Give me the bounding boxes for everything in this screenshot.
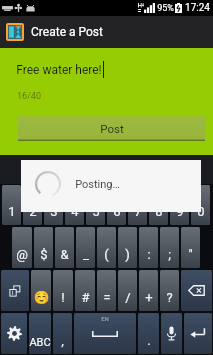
staticText: 7: [134, 204, 142, 219]
button[interactable]: mic: [161, 313, 182, 354]
staticText: Free water here!: [16, 63, 102, 77]
button[interactable]: ?: [160, 270, 179, 311]
button[interactable]: /: [118, 270, 137, 311]
staticText: 4: [71, 204, 79, 219]
button[interactable]: 2: [23, 185, 42, 225]
button[interactable]: #: [75, 270, 95, 311]
button[interactable]: +: [139, 270, 158, 311]
staticText: =: [103, 290, 111, 305]
button[interactable]: 7: [128, 185, 147, 225]
staticText: EN: [101, 315, 109, 322]
staticText: 17:24: [185, 2, 210, 14]
button[interactable]: $: [34, 227, 53, 268]
staticText: 3: [50, 204, 58, 219]
staticText: ,: [61, 333, 64, 348]
staticText: !: [61, 290, 65, 305]
button[interactable]: _: [76, 227, 95, 268]
button[interactable]: ☺: [31, 270, 51, 311]
button[interactable]: ): [118, 227, 137, 268]
button[interactable]: !: [53, 270, 73, 311]
button[interactable]: shift: [1, 270, 29, 311]
button[interactable]: ;: [160, 227, 179, 268]
staticText: &: [60, 247, 69, 262]
staticText: 9: [176, 204, 184, 219]
button[interactable]: 3: [44, 185, 63, 225]
button[interactable]: space: [74, 313, 136, 354]
staticText: Posting…: [75, 178, 120, 191]
staticText: @: [16, 247, 28, 262]
staticText: 5: [92, 204, 100, 219]
button[interactable]: 6: [107, 185, 126, 225]
staticText: Post: [100, 122, 124, 135]
staticText: .: [147, 333, 151, 348]
staticText: 95%: [157, 3, 174, 14]
staticText: Create a Post: [31, 25, 103, 39]
button[interactable]: ABC: [29, 313, 51, 354]
staticText: ?: [166, 290, 173, 305]
button[interactable]: gear: [1, 313, 27, 354]
staticText: 1: [8, 204, 16, 219]
button[interactable]: :: [139, 227, 158, 268]
button[interactable]: 5: [86, 185, 105, 225]
staticText: ;: [168, 247, 171, 262]
button[interactable]: Post: [18, 115, 205, 141]
button[interactable]: (: [97, 227, 116, 268]
button[interactable]: 1: [2, 185, 21, 225]
button[interactable]: 0: [191, 185, 210, 225]
button[interactable]: &: [55, 227, 74, 268]
staticText: 0: [197, 204, 205, 219]
staticText: 2: [29, 204, 37, 219]
button[interactable]: ": [181, 227, 200, 268]
staticText: ": [188, 247, 193, 262]
button[interactable]: enter: [184, 313, 212, 354]
staticText: /: [125, 290, 131, 305]
staticText: #: [81, 290, 90, 305]
staticText: ): [125, 247, 130, 262]
button[interactable]: =: [97, 270, 116, 311]
button[interactable]: 8: [149, 185, 168, 225]
staticText: 6: [113, 204, 121, 219]
staticText: :: [147, 247, 151, 262]
button[interactable]: back: [181, 270, 212, 311]
staticText: $: [40, 247, 48, 262]
staticText: 8: [155, 204, 163, 219]
staticText: ABC: [29, 336, 51, 349]
staticText: 16/40: [17, 91, 41, 102]
staticText: (: [104, 247, 109, 262]
staticText: _: [83, 247, 89, 262]
button[interactable]: .: [138, 313, 159, 354]
button[interactable]: 9: [170, 185, 189, 225]
staticText: ☺: [33, 290, 50, 305]
staticText: +: [145, 290, 153, 305]
button[interactable]: 4: [65, 185, 84, 225]
button[interactable]: ,: [53, 313, 72, 354]
button[interactable]: @: [12, 227, 32, 268]
